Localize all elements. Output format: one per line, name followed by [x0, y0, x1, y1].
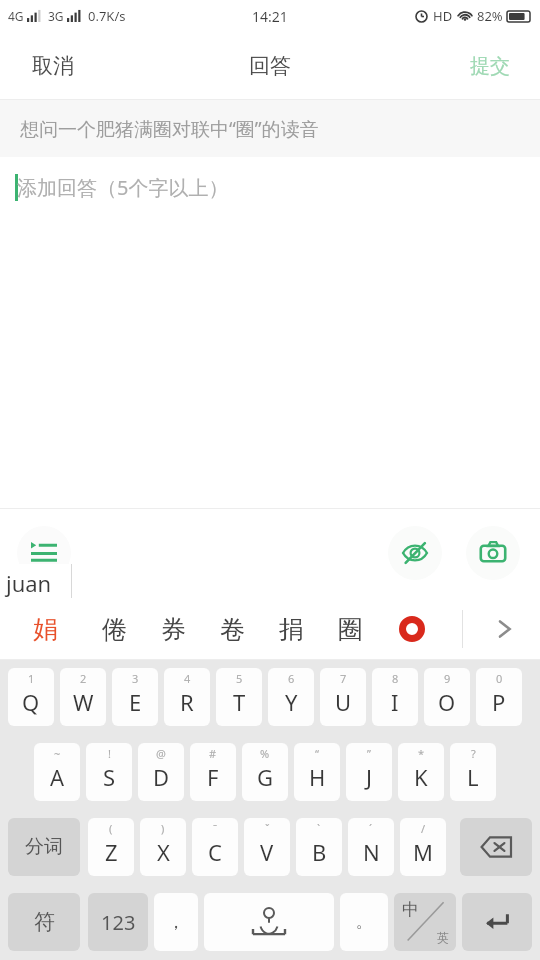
- button[interactable]: /: [400, 818, 446, 876]
- button[interactable]: 倦: [91, 598, 137, 660]
- staticText: 5: [236, 671, 243, 686]
- button[interactable]: 卷: [209, 598, 255, 660]
- staticText: 3G: [48, 8, 64, 24]
- button[interactable]: 7: [320, 668, 366, 726]
- button[interactable]: !: [86, 743, 132, 801]
- button[interactable]: Anonymous: [388, 526, 442, 580]
- staticText: 回答: [249, 53, 291, 79]
- staticText: ˉ: [213, 821, 218, 836]
- staticText: %: [260, 746, 270, 761]
- button[interactable]: 。: [340, 893, 388, 951]
- button[interactable]: 0: [476, 668, 522, 726]
- staticText: S: [103, 762, 116, 792]
- button[interactable]: @: [138, 743, 184, 801]
- staticText: *: [418, 746, 425, 761]
- staticText: ，: [167, 911, 185, 934]
- staticText: 英: [437, 930, 449, 945]
- staticText: 卷: [220, 614, 245, 645]
- staticText: 0.7K/s: [88, 7, 126, 25]
- button[interactable]: 8: [372, 668, 418, 726]
- staticText: 券: [161, 614, 186, 645]
- staticText: ˇ: [265, 821, 270, 836]
- button[interactable]: ): [140, 818, 186, 876]
- staticText: juan: [6, 568, 52, 598]
- staticText: 想问一个肥猪满圈对联中“圈”的读音: [20, 116, 319, 142]
- button[interactable]: 想问一个肥猪满圈对联中“圈”的读音: [0, 100, 540, 157]
- staticText: M: [413, 837, 433, 867]
- button[interactable]: 4: [164, 668, 210, 726]
- button[interactable]: Enter: [462, 893, 532, 951]
- staticText: 0: [496, 671, 503, 686]
- button[interactable]: Logo: [390, 598, 434, 660]
- button[interactable]: 123: [88, 893, 148, 951]
- staticText: ?: [471, 746, 476, 761]
- staticText: HD: [433, 7, 453, 25]
- staticText: 分词: [25, 835, 63, 859]
- staticText: ): [161, 821, 165, 836]
- button[interactable]: 取消: [20, 45, 86, 87]
- staticText: 3: [132, 671, 139, 686]
- button[interactable]: 符: [8, 893, 80, 951]
- button[interactable]: 1: [8, 668, 54, 726]
- button[interactable]: 分词: [8, 818, 80, 876]
- staticText: K: [414, 762, 428, 792]
- staticText: C: [208, 837, 222, 867]
- staticText: 中: [402, 899, 419, 920]
- button[interactable]: 2: [60, 668, 106, 726]
- button[interactable]: 券: [150, 598, 196, 660]
- staticText: ~: [54, 746, 61, 761]
- staticText: 123: [101, 909, 136, 936]
- button[interactable]: Outline: [17, 526, 71, 580]
- staticText: N: [363, 837, 380, 867]
- button[interactable]: 提交: [460, 46, 520, 87]
- staticText: 符: [34, 909, 55, 935]
- staticText: Z: [105, 837, 118, 867]
- button[interactable]: (: [88, 818, 134, 876]
- button[interactable]: 6: [268, 668, 314, 726]
- button[interactable]: ˊ: [348, 818, 394, 876]
- button[interactable]: Camera: [466, 526, 520, 580]
- button[interactable]: ˋ: [296, 818, 342, 876]
- staticText: F: [207, 762, 219, 792]
- staticText: E: [129, 687, 142, 717]
- button[interactable]: ，: [154, 893, 198, 951]
- button[interactable]: Chinese English toggle: [394, 893, 456, 951]
- button[interactable]: 娟: [22, 598, 68, 660]
- staticText: 提交: [470, 54, 510, 79]
- staticText: R: [180, 687, 194, 717]
- button[interactable]: 9: [424, 668, 470, 726]
- button[interactable]: Backspace: [460, 818, 532, 876]
- button[interactable]: ”: [346, 743, 392, 801]
- button[interactable]: ˇ: [244, 818, 290, 876]
- button[interactable]: %: [242, 743, 288, 801]
- staticText: I: [391, 687, 399, 717]
- button[interactable]: More candidates: [478, 598, 530, 660]
- button[interactable]: *: [398, 743, 444, 801]
- button[interactable]: 5: [216, 668, 262, 726]
- button[interactable]: 捐: [268, 598, 314, 660]
- staticText: P: [492, 687, 506, 717]
- staticText: 捐: [279, 614, 304, 645]
- staticText: B: [312, 837, 327, 867]
- staticText: 娟: [33, 614, 58, 645]
- staticText: A: [50, 762, 65, 792]
- button[interactable]: ~: [34, 743, 80, 801]
- staticText: /: [421, 821, 426, 836]
- staticText: 取消: [32, 53, 74, 79]
- staticText: J: [366, 762, 373, 792]
- button[interactable]: ?: [450, 743, 496, 801]
- staticText: 。: [356, 912, 372, 932]
- button[interactable]: ˉ: [192, 818, 238, 876]
- button[interactable]: 圈: [327, 598, 373, 660]
- button[interactable]: Space: [204, 893, 334, 951]
- staticText: ˊ: [369, 821, 373, 836]
- staticText: 6: [288, 671, 295, 686]
- staticText: 4G: [8, 8, 24, 24]
- staticText: 1: [28, 671, 35, 686]
- staticText: Q: [22, 687, 40, 717]
- button[interactable]: 3: [112, 668, 158, 726]
- staticText: H: [309, 762, 326, 792]
- button[interactable]: “: [294, 743, 340, 801]
- button[interactable]: #: [190, 743, 236, 801]
- staticText: 圈: [338, 614, 363, 645]
